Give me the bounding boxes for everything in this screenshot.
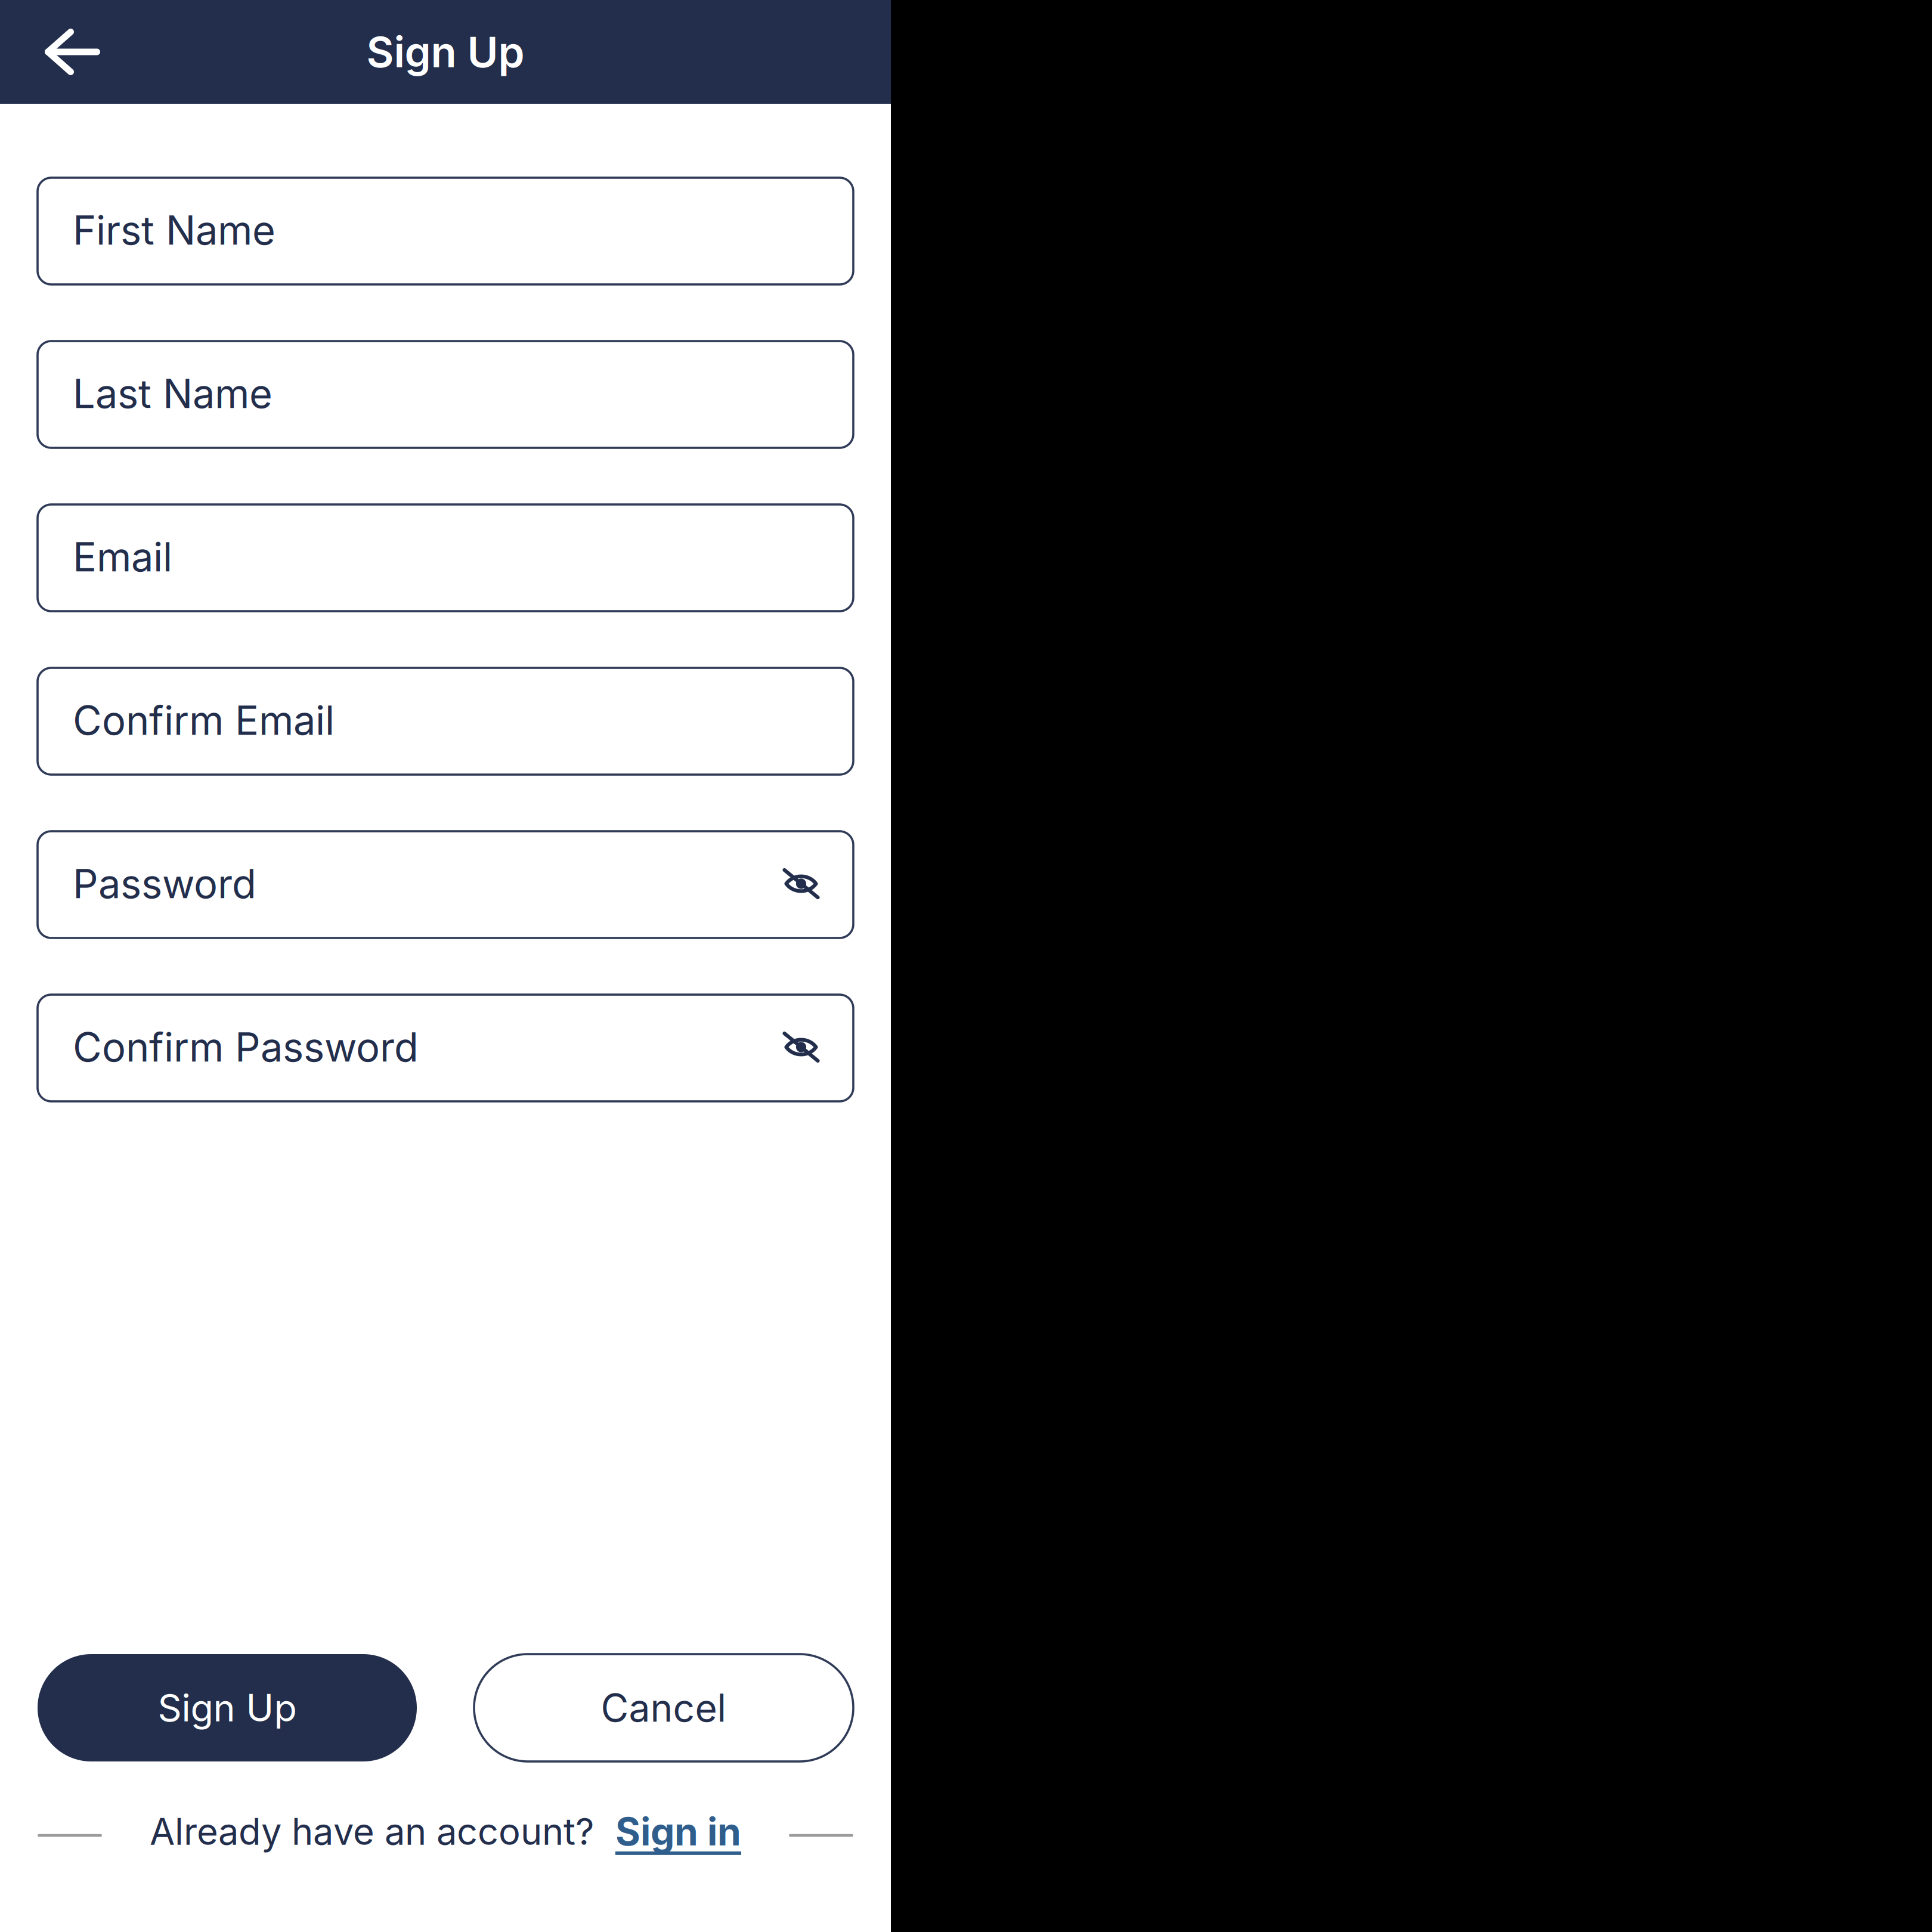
staticText: Sign Up — [158, 1685, 297, 1730]
staticText: Confirm Email — [73, 696, 335, 744]
button[interactable]: Show password — [782, 868, 820, 901]
button[interactable]: Back — [0, 6, 120, 98]
staticText: Last Name — [73, 370, 273, 418]
button[interactable]: Already have an account? — [150, 1808, 741, 1862]
button[interactable]: Cancel — [474, 1654, 853, 1761]
staticText: Sign Up — [366, 26, 524, 77]
staticText: Password — [73, 860, 256, 908]
button[interactable]: Show confirm password — [782, 1032, 820, 1064]
staticText: Cancel — [601, 1685, 727, 1731]
button[interactable]: Sign Up — [38, 1654, 417, 1761]
staticText: Confirm Password — [73, 1023, 419, 1071]
staticText: Email — [73, 533, 172, 581]
staticText: Already have an account? — [150, 1809, 594, 1854]
staticText: Sign in — [615, 1808, 741, 1855]
staticText: First Name — [73, 206, 275, 254]
